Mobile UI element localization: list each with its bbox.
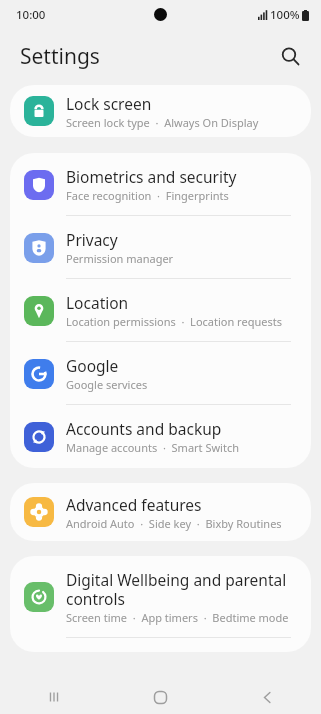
staticText: Screen lock type · Always On Display [66, 115, 259, 130]
staticText: Settings [20, 42, 100, 71]
staticText: Location permissions · Location requests [66, 314, 282, 329]
staticText: Accounts and backup [66, 418, 222, 439]
staticText: 100% [270, 7, 300, 23]
button[interactable]: Biometrics and security [10, 153, 311, 216]
staticText: Advanced features [66, 494, 202, 515]
staticText: Permission manager [66, 251, 174, 266]
button[interactable]: Back [214, 680, 321, 714]
button[interactable]: Accounts and backup [10, 405, 311, 468]
staticText: Location [66, 292, 129, 313]
button[interactable]: Google [10, 342, 311, 405]
staticText: Android Auto · Side key · Bixby Routines [66, 516, 282, 531]
button[interactable]: Recent apps [0, 680, 107, 714]
staticText: Screen time · App timers · Bedtime mode [66, 610, 289, 625]
staticText: Lock screen [66, 93, 152, 114]
staticText: Google services [66, 377, 148, 392]
staticText: Google [66, 355, 119, 376]
button[interactable]: Location [10, 279, 311, 342]
button[interactable]: Search [273, 39, 307, 73]
staticText: Manage accounts · Smart Switch [66, 440, 239, 455]
button[interactable]: Home [107, 680, 214, 714]
button[interactable]: Digital Wellbeing and parental controls [10, 556, 311, 638]
staticText: Digital Wellbeing and parental controls [66, 569, 287, 609]
button[interactable]: Advanced features [10, 483, 311, 541]
button[interactable]: Privacy [10, 216, 311, 279]
button[interactable]: Lock screen [10, 85, 311, 137]
staticText: 10:00 [16, 7, 46, 23]
staticText: Privacy [66, 229, 118, 250]
staticText: Biometrics and security [66, 166, 237, 187]
staticText: Face recognition · Fingerprints [66, 188, 229, 203]
